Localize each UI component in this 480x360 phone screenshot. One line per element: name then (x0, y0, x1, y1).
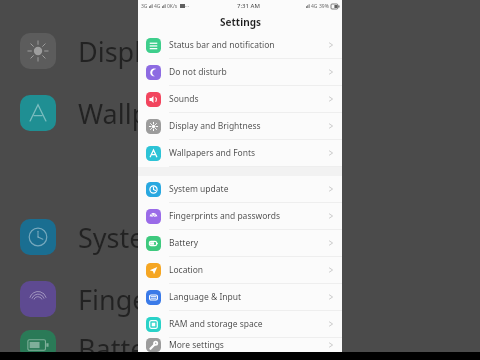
other: Open (329, 42, 333, 48)
button[interactable]: Sounds (138, 86, 342, 113)
staticText: Status bar and notification (169, 39, 275, 51)
staticText: ··· (185, 3, 190, 10)
other: Open (329, 123, 333, 129)
other: Open (329, 150, 333, 156)
staticText: Settings (220, 15, 261, 29)
staticText: Location (169, 264, 204, 276)
staticText: Wallpapers and Fonts (169, 147, 256, 159)
staticText: 39% (319, 3, 329, 10)
button[interactable]: Fingerprints and passwords (138, 203, 342, 230)
button[interactable]: RAM and storage space (138, 311, 342, 338)
staticText: Displa (78, 33, 157, 70)
other: Open (329, 321, 333, 327)
staticText: Batter (78, 330, 157, 360)
staticText: Do not disturb (169, 66, 227, 78)
staticText: System update (169, 183, 229, 195)
button[interactable]: Display and Brightness (138, 113, 342, 140)
staticText: Battery (169, 237, 199, 249)
other: Open (329, 96, 333, 102)
staticText: System (78, 219, 170, 256)
staticText: Fingerprints and passwords (169, 210, 280, 222)
staticText: Language & Input (169, 291, 242, 303)
button[interactable]: System update (138, 176, 342, 203)
other: Open (329, 213, 333, 219)
other: Open (329, 294, 333, 300)
staticText: 4G (154, 3, 161, 10)
staticText: RAM and storage space (169, 318, 263, 330)
other: Open (329, 240, 333, 246)
staticText: More settings (169, 339, 224, 351)
staticText: 4G (311, 3, 318, 10)
button[interactable]: Do not disturb (138, 59, 342, 86)
staticText: Finger (78, 281, 159, 318)
button[interactable]: Language & Input (138, 284, 342, 311)
other: Open (329, 267, 333, 273)
staticText: 3G (141, 3, 148, 10)
button[interactable]: Location (138, 257, 342, 284)
staticText: Sounds (169, 93, 199, 105)
button[interactable]: Status bar and notification (138, 32, 342, 59)
button[interactable]: More settings (138, 338, 342, 352)
staticText: Display and Brightness (169, 120, 261, 132)
other: Open (329, 186, 333, 192)
button[interactable]: Battery (138, 230, 342, 257)
staticText: 7:31 AM (237, 2, 260, 10)
other: Open (329, 69, 333, 75)
other: Open (329, 342, 333, 348)
staticText: Wallpa (78, 95, 164, 132)
button[interactable]: Wallpapers and Fonts (138, 140, 342, 167)
staticText: 0K/s (167, 3, 178, 10)
